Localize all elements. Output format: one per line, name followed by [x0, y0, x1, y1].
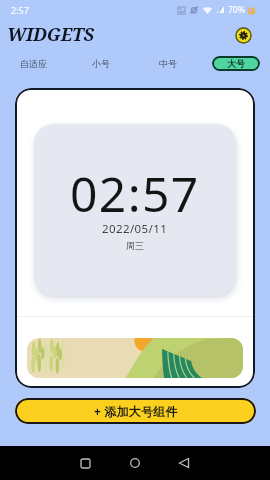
button[interactable]: 中号: [134, 52, 202, 74]
staticText: 70%: [228, 4, 245, 16]
button[interactable]: Home: [123, 451, 147, 475]
staticText: 大号: [227, 58, 245, 69]
button[interactable]: Settings: [235, 27, 252, 44]
staticText: 2:57: [11, 4, 29, 16]
button[interactable]: 大号: [212, 56, 260, 71]
staticText: 小号: [92, 58, 110, 69]
staticText: 2022/05/11: [102, 221, 168, 237]
button[interactable]: + 添加大号组件: [15, 398, 256, 424]
staticText: 中号: [159, 58, 177, 69]
staticText: + 添加大号组件: [94, 403, 178, 419]
staticText: 周三: [126, 240, 144, 251]
button[interactable]: Recents: [73, 451, 97, 475]
button[interactable]: Back: [172, 451, 196, 475]
staticText: 02:57: [70, 161, 200, 226]
button[interactable]: 小号: [67, 52, 134, 74]
button[interactable]: 02:57: [34, 124, 236, 296]
button[interactable]: [27, 338, 243, 378]
button[interactable]: 自适应: [0, 52, 67, 74]
staticText: 自适应: [20, 58, 47, 69]
staticText: WIDGETS: [7, 22, 94, 47]
